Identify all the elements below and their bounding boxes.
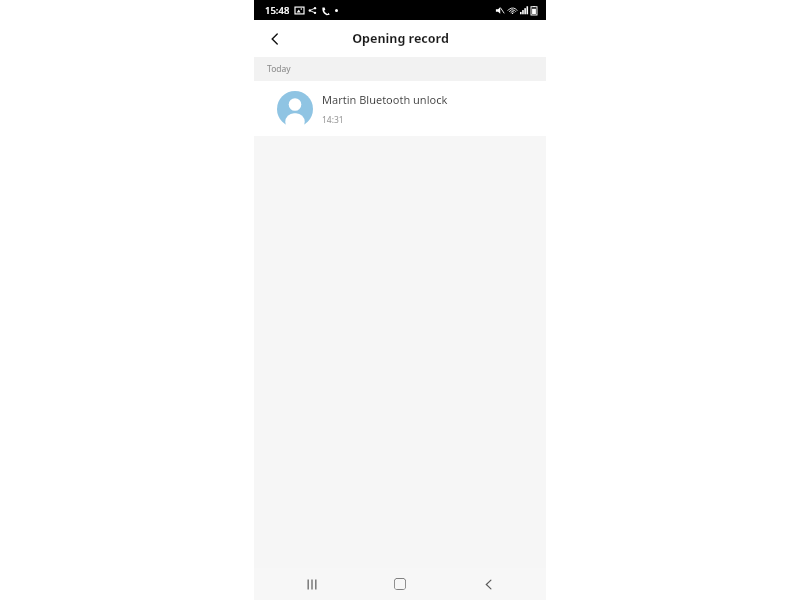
button[interactable]: Back (458, 568, 518, 600)
staticText: Today (267, 63, 291, 75)
button[interactable]: Back (258, 22, 292, 56)
staticText: Martin Bluetooth unlock (322, 92, 448, 107)
staticText: 15:48 (265, 4, 290, 17)
staticText: Opening record (352, 30, 449, 47)
button[interactable]: Martin Bluetooth unlock (254, 81, 546, 136)
staticText: 14:31 (322, 114, 344, 126)
button[interactable]: Home (370, 568, 430, 600)
button[interactable]: Recent apps (282, 568, 342, 600)
